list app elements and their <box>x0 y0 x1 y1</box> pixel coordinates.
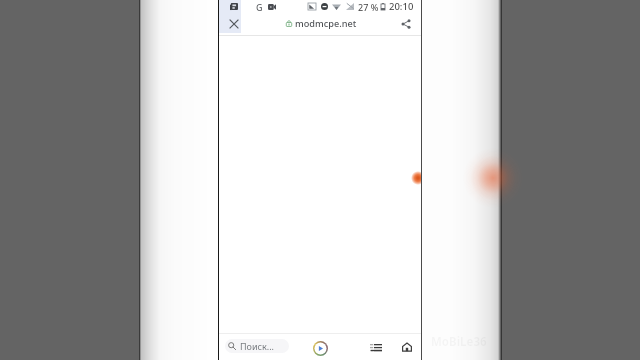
button[interactable]: Поиск... <box>225 339 289 353</box>
button[interactable]: Home <box>397 339 416 355</box>
button[interactable]: Share <box>391 13 421 34</box>
button[interactable]: Close <box>219 13 248 34</box>
staticText: Поиск... <box>240 340 274 352</box>
button[interactable]: Alice assistant <box>311 339 329 357</box>
staticText: 20:10 <box>389 0 414 13</box>
button[interactable]: modmcpe.net <box>248 17 391 30</box>
staticText: 27 % <box>358 1 379 13</box>
button[interactable]: Tabs <box>365 339 387 355</box>
staticText: MoBiLe36 <box>431 334 487 350</box>
staticText: modmcpe.net <box>295 17 357 30</box>
staticText: G <box>256 1 263 13</box>
